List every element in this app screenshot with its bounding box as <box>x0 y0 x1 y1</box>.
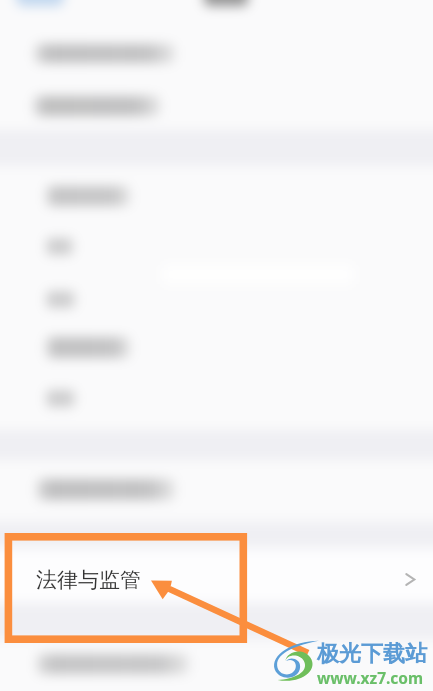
button[interactable]: Teen mode <box>0 270 433 322</box>
button[interactable]: Third party information sharing list <box>0 641 433 691</box>
button[interactable]: Account and security <box>0 0 433 78</box>
staticText: 极光下载站 <box>317 640 427 668</box>
button[interactable]: 法律与监管 <box>0 550 433 605</box>
button[interactable]: Notification settings <box>0 78 433 130</box>
button[interactable]: Privacy settings <box>0 166 433 218</box>
other: Open legal and regulatory <box>401 570 420 589</box>
button[interactable]: General <box>0 218 433 270</box>
button[interactable]: Personal information collection list <box>0 460 433 522</box>
button[interactable]: About us <box>0 374 433 428</box>
staticText: www.xz7.com <box>317 667 424 688</box>
button[interactable]: Help and feedback <box>0 322 433 374</box>
staticText: 法律与监管 <box>36 567 141 593</box>
